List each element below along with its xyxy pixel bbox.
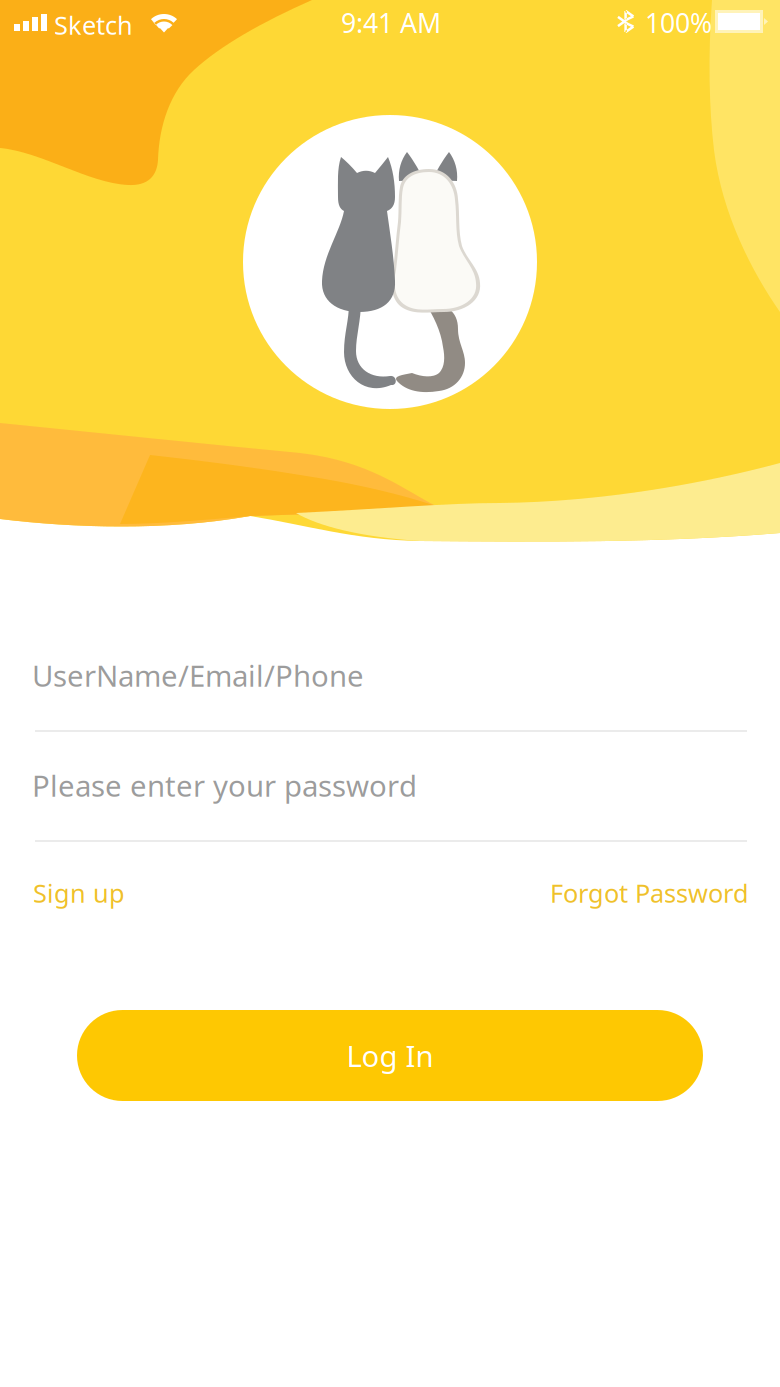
- staticText: Sign up: [33, 876, 125, 910]
- staticText: UserName/Email/Phone: [32, 656, 364, 695]
- staticText: Sketch: [54, 8, 133, 42]
- button[interactable]: Forgot Password: [550, 876, 747, 910]
- staticText: 9:41 AM: [341, 5, 441, 40]
- button[interactable]: Log In: [77, 1010, 703, 1101]
- staticText: Log In: [346, 1036, 433, 1075]
- staticText: Please enter your password: [32, 766, 417, 805]
- button[interactable]: Sign up: [35, 876, 125, 910]
- staticText: 100%: [645, 5, 712, 40]
- staticText: Forgot Password: [550, 876, 749, 910]
